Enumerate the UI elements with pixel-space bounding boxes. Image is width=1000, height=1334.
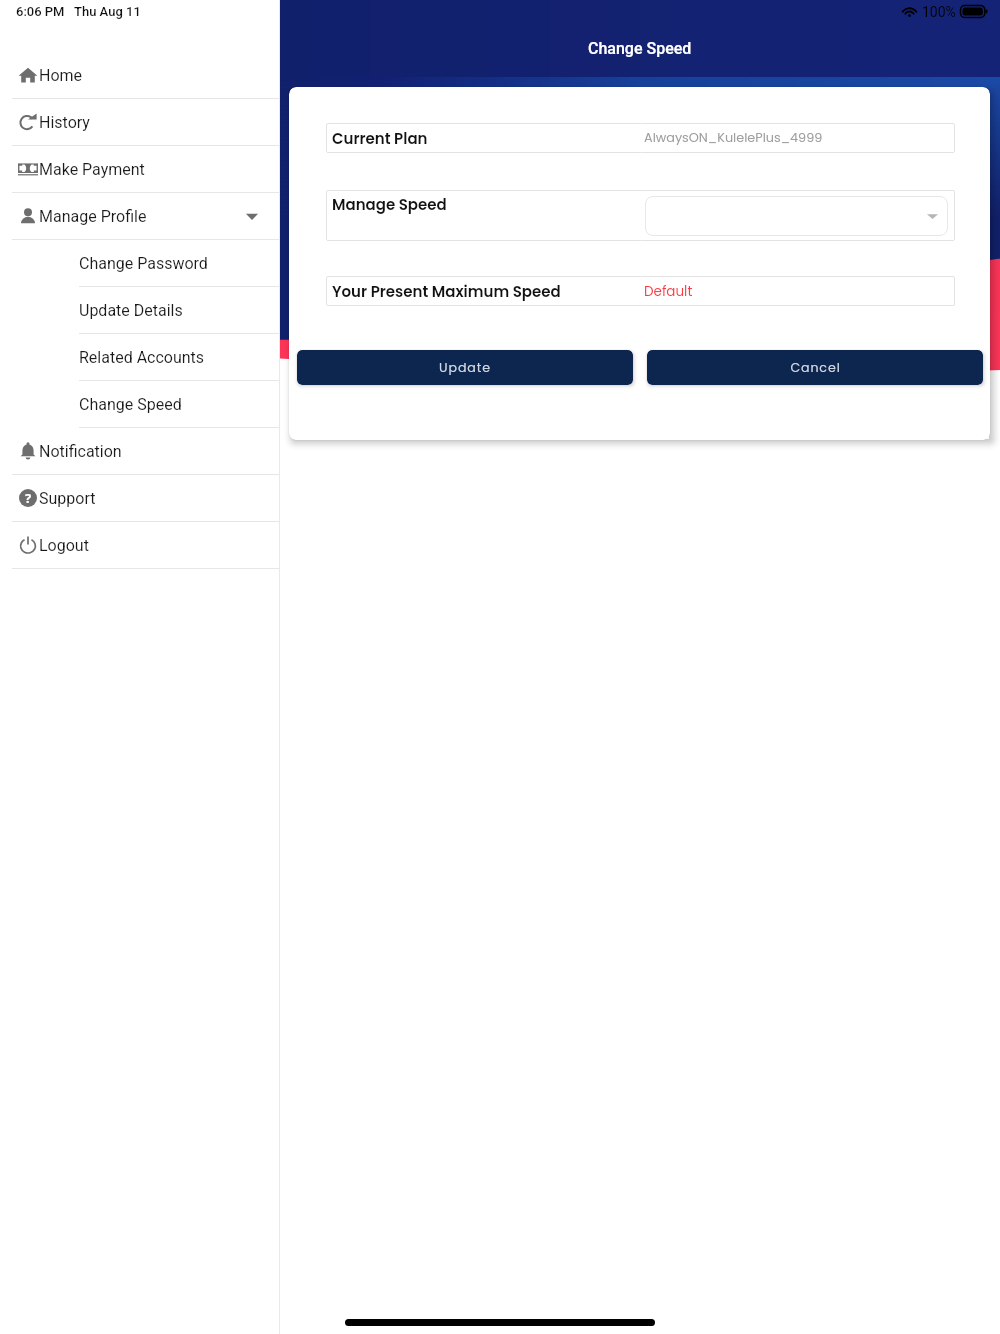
staticText: Manage Speed <box>332 194 447 215</box>
staticText: 100% <box>922 4 956 20</box>
button[interactable]: Change Speed <box>0 381 280 428</box>
button[interactable]: Related Accounts <box>0 334 280 381</box>
staticText: AlwaysON_KulelePlus_4999 <box>644 129 823 147</box>
staticText: 6:06 PM <box>16 4 65 19</box>
staticText: Logout <box>39 536 89 555</box>
button[interactable]: Home <box>0 52 280 99</box>
staticText: Make Payment <box>39 160 145 179</box>
staticText: Change Speed <box>79 395 182 414</box>
staticText: Support <box>39 489 96 508</box>
button[interactable]: History <box>0 99 280 146</box>
button[interactable]: Make Payment <box>0 146 280 193</box>
staticText: Current Plan <box>332 128 428 149</box>
button[interactable]: Logout <box>0 522 280 569</box>
staticText: Home <box>39 66 83 85</box>
staticText: History <box>39 113 90 132</box>
staticText: Cancel <box>790 359 841 377</box>
button[interactable]: Expand Manage Profile <box>243 207 261 225</box>
staticText: Related Accounts <box>79 348 205 367</box>
staticText: Your Present Maximum Speed <box>332 281 561 302</box>
button[interactable]: Notification <box>0 428 280 475</box>
staticText: Update <box>439 359 491 377</box>
staticText: ? <box>25 489 32 507</box>
staticText: Update Details <box>79 301 183 320</box>
button[interactable]: ? <box>0 475 280 522</box>
button[interactable]: Select speed <box>645 196 948 236</box>
staticText: Thu Aug 11 <box>74 4 141 19</box>
staticText: Change Speed <box>588 39 692 58</box>
staticText: Notification <box>39 442 122 461</box>
button[interactable]: Manage Profile <box>0 193 280 240</box>
staticText: Manage Profile <box>39 207 147 226</box>
button[interactable]: Change Password <box>0 240 280 287</box>
button[interactable]: Cancel <box>647 350 983 385</box>
button[interactable]: Update Details <box>0 287 280 334</box>
staticText: Default <box>644 282 693 301</box>
staticText: Change Password <box>79 254 208 273</box>
button[interactable]: Update <box>297 350 633 385</box>
